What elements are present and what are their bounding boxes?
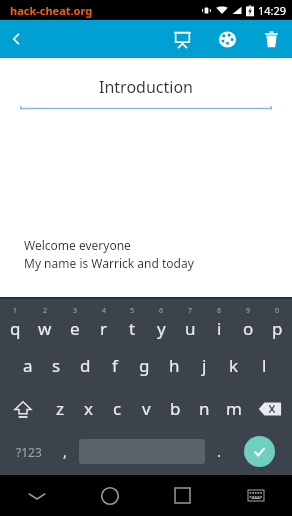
button[interactable]: Switch keyboard xyxy=(219,475,292,516)
button[interactable]: 1 xyxy=(0,301,30,344)
staticText: y xyxy=(157,317,166,340)
button[interactable]: j xyxy=(189,344,219,387)
button[interactable]: a xyxy=(13,344,42,387)
staticText: p xyxy=(272,317,283,340)
staticText: , xyxy=(63,442,67,461)
staticText: e xyxy=(70,317,80,340)
button[interactable]: 3 xyxy=(60,301,89,344)
button[interactable]: k xyxy=(219,344,249,387)
button[interactable]: Recent apps xyxy=(146,475,219,516)
button[interactable]: , xyxy=(51,430,79,473)
button[interactable]: Welcome everyone xyxy=(24,237,268,271)
staticText: n xyxy=(199,397,210,420)
button[interactable]: z xyxy=(45,387,74,430)
staticText: r xyxy=(100,317,108,340)
staticText: b xyxy=(170,397,181,420)
button[interactable]: Present xyxy=(160,20,205,58)
staticText: z xyxy=(56,397,64,420)
staticText: x xyxy=(84,397,93,420)
button[interactable]: 2 xyxy=(30,301,60,344)
staticText: v xyxy=(142,397,151,420)
staticText: m xyxy=(226,397,242,420)
button[interactable]: Theme xyxy=(205,20,250,58)
button[interactable]: Done xyxy=(244,436,275,467)
staticText: 3 xyxy=(73,306,78,316)
staticText: h xyxy=(169,354,180,377)
button[interactable]: 8 xyxy=(205,301,234,344)
staticText: 8 xyxy=(217,306,222,316)
staticText: hack-cheat.org xyxy=(10,3,93,18)
staticText: i xyxy=(217,317,222,340)
button[interactable]: ?123 xyxy=(6,430,51,473)
button[interactable]: l xyxy=(249,344,279,387)
staticText: 0 xyxy=(275,306,280,316)
button[interactable]: Introduction xyxy=(20,76,272,111)
staticText: k xyxy=(229,354,239,377)
button[interactable]: Home xyxy=(73,475,146,516)
staticText: c xyxy=(113,397,122,420)
button[interactable]: x xyxy=(74,387,103,430)
staticText: w xyxy=(38,317,52,340)
staticText: 9 xyxy=(246,306,251,316)
button[interactable]: m xyxy=(219,387,248,430)
button[interactable]: h xyxy=(159,344,189,387)
staticText: a xyxy=(23,354,33,377)
button[interactable]: 7 xyxy=(176,301,205,344)
button[interactable]: 9 xyxy=(234,301,263,344)
staticText: My name is Warrick and today xyxy=(24,255,194,271)
button[interactable]: 6 xyxy=(147,301,176,344)
button[interactable]: 5 xyxy=(118,301,147,344)
button[interactable]: 0 xyxy=(263,301,292,344)
staticText: 6 xyxy=(159,306,164,316)
button[interactable]: Hide keyboard xyxy=(0,475,73,516)
button[interactable]: Delete xyxy=(250,20,292,58)
button[interactable]: c xyxy=(103,387,132,430)
staticText: s xyxy=(52,354,61,377)
button[interactable]: 4 xyxy=(89,301,118,344)
staticText: 5 xyxy=(130,306,135,316)
staticText: Welcome everyone xyxy=(24,237,131,253)
staticText: 14:29 xyxy=(258,3,287,18)
button[interactable]: b xyxy=(161,387,190,430)
button[interactable]: v xyxy=(132,387,161,430)
button[interactable]: s xyxy=(42,344,71,387)
staticText: 1 xyxy=(13,306,18,316)
staticText: j xyxy=(202,354,207,377)
staticText: g xyxy=(139,354,150,377)
staticText: Introduction xyxy=(20,76,272,98)
staticText: ?123 xyxy=(16,444,42,460)
button[interactable]: Backspace xyxy=(248,387,292,430)
button[interactable]: Back xyxy=(0,20,34,58)
staticText: f xyxy=(112,354,118,377)
button[interactable]: g xyxy=(129,344,159,387)
button[interactable]: n xyxy=(190,387,219,430)
staticText: 7 xyxy=(188,306,193,316)
staticText: o xyxy=(243,317,254,340)
staticText: . xyxy=(217,442,221,461)
button[interactable]: d xyxy=(71,344,100,387)
staticText: t xyxy=(129,317,136,340)
button[interactable]: f xyxy=(100,344,129,387)
staticText: d xyxy=(80,354,91,377)
button[interactable]: . xyxy=(205,430,233,473)
staticText: 2 xyxy=(43,306,48,316)
staticText: l xyxy=(262,354,267,377)
staticText: u xyxy=(185,317,196,340)
button[interactable]: Shift xyxy=(0,387,45,430)
staticText: 4 xyxy=(102,306,107,316)
staticText: q xyxy=(10,317,21,340)
